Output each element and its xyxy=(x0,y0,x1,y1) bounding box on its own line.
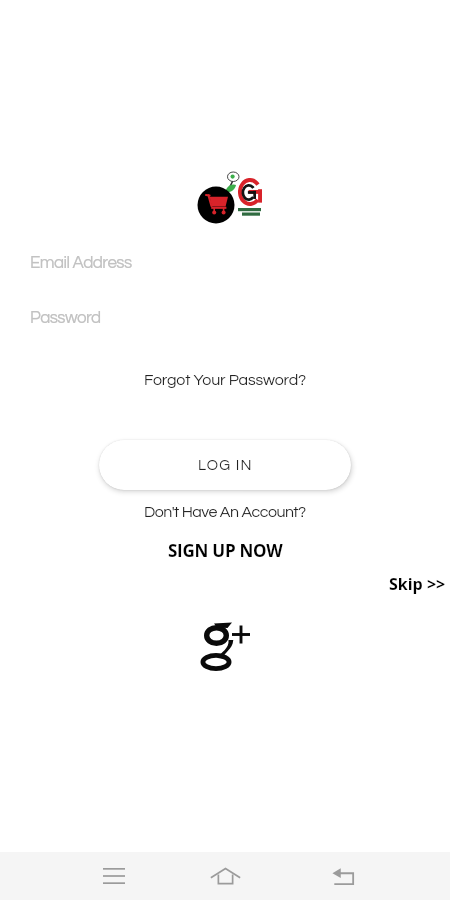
button[interactable]: SIGN UP NOW xyxy=(160,535,291,566)
button[interactable]: Email Address xyxy=(0,246,450,280)
button[interactable]: Back xyxy=(304,852,382,900)
button[interactable]: LOG IN xyxy=(99,440,351,490)
button[interactable]: Forgot Your Password? xyxy=(136,368,315,392)
button[interactable]: Sign in with Google Plus xyxy=(186,606,266,686)
staticText: LOG IN xyxy=(198,458,253,473)
staticText: Password xyxy=(30,309,101,327)
button[interactable]: Recent apps xyxy=(75,852,153,900)
button[interactable]: Skip >> xyxy=(381,570,450,598)
button[interactable]: Don't Have An Account? xyxy=(136,501,314,523)
button[interactable]: Home xyxy=(186,852,264,900)
button[interactable]: Password xyxy=(0,301,450,335)
staticText: Email Address xyxy=(30,254,132,272)
